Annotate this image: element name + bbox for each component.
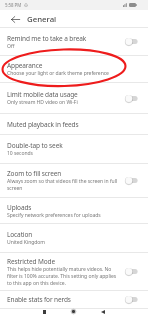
button[interactable]: Home [57,309,89,314]
button[interactable]: Toggle [125,267,138,276]
staticText: Remind me to take a break [7,34,87,43]
button[interactable]: Limit mobile data usage [0,83,148,113]
staticText: 5:58 PM [5,2,22,8]
staticText: Limit mobile data usage [7,90,78,99]
button[interactable]: Appearance [0,56,148,82]
staticText: 10 seconds [7,150,33,157]
button[interactable]: Zoom to fill screen [0,164,148,197]
staticText: This helps hide potentially mature video… [7,266,122,287]
staticText: Specify network preferences for uploads [7,212,101,219]
button[interactable]: Back [11,12,20,27]
staticText: Location [7,230,33,239]
staticText: Restricted Mode [7,257,56,266]
staticText: Off [7,43,15,50]
button[interactable]: Toggle [125,295,138,304]
staticText: Appearance [7,61,43,70]
staticText: Zoom to fill screen [7,169,62,178]
staticText: Double-tap to seek [7,141,63,150]
button[interactable]: Double-tap to seek [0,135,148,163]
button[interactable]: Enable stats for nerds [0,291,148,308]
staticText: General [27,14,57,25]
staticText: Uploads [7,203,32,212]
button[interactable]: Location [0,224,148,252]
staticText: Choose your light or dark theme preferen… [7,70,109,77]
button[interactable]: Muted playback in feeds [0,114,148,134]
staticText: Enable stats for nerds [7,295,71,304]
staticText: Always zoom so that videos fill the scre… [7,178,122,192]
button[interactable]: Uploads [0,198,148,223]
button[interactable]: Toggle [125,176,138,185]
staticText: Muted playback in feeds [7,120,79,129]
button[interactable]: Toggle [125,37,138,46]
staticText: Only stream HD video on Wi-Fi [7,99,78,106]
button[interactable]: Recents [32,309,57,314]
button[interactable]: Toggle [125,94,138,103]
button[interactable]: Remind me to take a break [0,28,148,55]
button[interactable]: Restricted Mode [0,253,148,290]
button[interactable]: Back [89,309,117,314]
staticText: United Kingdom [7,239,46,246]
